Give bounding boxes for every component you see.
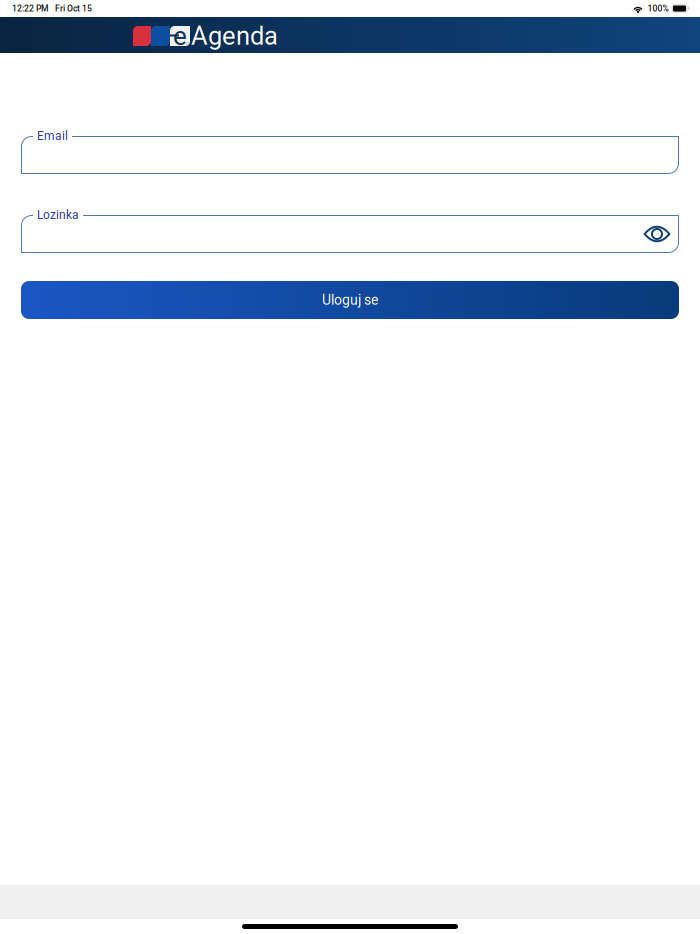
staticText: Fri Oct 15 <box>55 3 92 14</box>
staticText: Uloguj se <box>322 292 378 308</box>
button[interactable]: Uloguj se <box>21 281 679 319</box>
button[interactable]: Show password <box>635 215 679 253</box>
staticText: 12:22 PM <box>12 3 49 14</box>
staticText: Agenda <box>191 21 278 51</box>
staticText: Email <box>37 129 68 143</box>
staticText: Lozinka <box>37 208 79 222</box>
button[interactable]: Email <box>21 136 679 174</box>
staticText: 100% <box>647 3 668 14</box>
staticText: e <box>173 21 187 51</box>
